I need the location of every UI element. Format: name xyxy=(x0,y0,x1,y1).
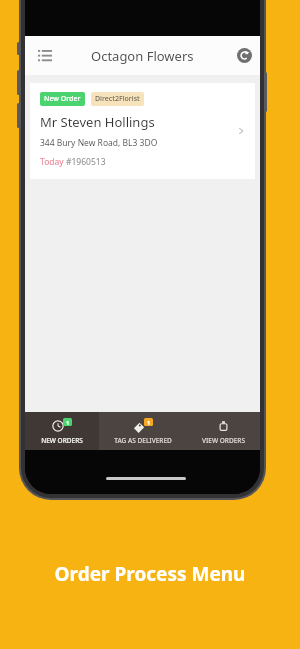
button[interactable]: 1 xyxy=(99,412,187,450)
staticText: Order Process Menu xyxy=(0,561,300,587)
staticText: NEW ORDERS xyxy=(41,436,83,445)
staticText: Direct2Florist xyxy=(95,94,140,104)
button[interactable]: Refresh xyxy=(237,48,252,63)
button[interactable]: VIEW ORDERS xyxy=(187,412,260,450)
button[interactable]: New Order xyxy=(30,83,255,179)
staticText: New Order xyxy=(44,94,81,104)
staticText: 1 xyxy=(147,419,151,426)
staticText: 344 Bury New Road, BL3 3DO xyxy=(40,137,158,149)
staticText: #1960513 xyxy=(66,156,106,168)
staticText: 1 xyxy=(66,419,70,426)
staticText: VIEW ORDERS xyxy=(202,436,245,445)
button[interactable]: Menu xyxy=(32,43,58,69)
staticText: Mr Steven Hollings xyxy=(40,113,155,131)
staticText: TAG AS DELIVERED xyxy=(114,436,172,445)
button[interactable]: 1 xyxy=(25,412,99,450)
staticText: Octagon Flowers xyxy=(91,47,194,65)
staticText: Today xyxy=(40,156,66,168)
